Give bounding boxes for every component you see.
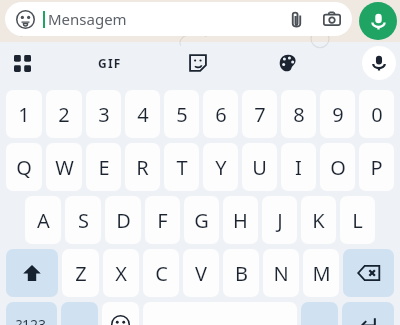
button[interactable]: 3 xyxy=(86,90,121,138)
staticText: J xyxy=(277,207,283,234)
button[interactable]: R xyxy=(125,143,160,191)
button[interactable]: , xyxy=(61,302,98,325)
button[interactable]: D xyxy=(105,196,141,244)
button[interactable]: W xyxy=(46,143,82,191)
button[interactable]: Z xyxy=(62,249,99,297)
button[interactable]: 8 xyxy=(281,90,316,138)
staticText: E xyxy=(98,154,110,181)
button[interactable]: Enter xyxy=(342,302,394,325)
staticText: H xyxy=(233,207,248,234)
button[interactable]: 1 xyxy=(6,90,42,138)
staticText: U xyxy=(252,154,267,181)
staticText: P xyxy=(370,154,383,181)
button[interactable]: K xyxy=(301,196,336,244)
staticText: F xyxy=(157,207,168,234)
staticText: Mensagem xyxy=(48,9,127,29)
staticText: W xyxy=(55,154,74,181)
button[interactable]: Apps xyxy=(7,42,37,84)
button[interactable]: Attach xyxy=(285,8,307,30)
staticText: K xyxy=(312,207,325,234)
staticText: Y xyxy=(215,154,227,181)
button[interactable]: ?123 xyxy=(6,302,57,325)
staticText: 3 xyxy=(98,101,110,128)
button[interactable]: 6 xyxy=(203,90,238,138)
button[interactable]: 5 xyxy=(164,90,199,138)
staticText: M xyxy=(312,260,331,287)
button[interactable]: M xyxy=(303,249,339,297)
button[interactable]: F xyxy=(145,196,180,244)
staticText: O xyxy=(330,154,346,181)
staticText: B xyxy=(235,260,248,287)
button[interactable]: T xyxy=(164,143,199,191)
button[interactable]: Record voice message xyxy=(359,2,397,40)
staticText: 9 xyxy=(332,101,344,128)
button[interactable]: H xyxy=(223,196,258,244)
staticText: A xyxy=(37,207,50,234)
button[interactable]: Emoji xyxy=(5,2,352,36)
staticText: Z xyxy=(75,260,87,287)
button[interactable]: Stickers xyxy=(183,42,213,84)
button[interactable]: Voice input xyxy=(362,46,396,80)
staticText: 8 xyxy=(293,101,305,128)
button[interactable]: . xyxy=(301,302,338,325)
button[interactable]: Q xyxy=(6,143,42,191)
staticText: 1 xyxy=(18,101,30,128)
staticText: X xyxy=(115,260,127,287)
button[interactable]: S xyxy=(65,196,101,244)
button[interactable]: 2 xyxy=(46,90,82,138)
staticText: 6 xyxy=(215,101,227,128)
button[interactable]: G xyxy=(184,196,219,244)
button[interactable]: L xyxy=(340,196,375,244)
staticText: 0 xyxy=(371,101,383,128)
staticText: 4 xyxy=(137,101,149,128)
button[interactable]: B xyxy=(223,249,259,297)
staticText: R xyxy=(136,154,149,181)
staticText: Q xyxy=(16,154,32,181)
staticText: 7 xyxy=(254,101,266,128)
staticText: C xyxy=(155,260,168,287)
staticText: L xyxy=(352,207,363,234)
button[interactable]: A xyxy=(25,196,61,244)
staticText: I xyxy=(295,154,302,181)
staticText: V xyxy=(195,260,207,287)
button[interactable]: V xyxy=(183,249,219,297)
button[interactable]: 9 xyxy=(320,90,355,138)
button[interactable]: Camera xyxy=(321,8,343,30)
button[interactable]: U xyxy=(242,143,277,191)
staticText: GIF xyxy=(98,55,122,71)
staticText: D xyxy=(116,207,131,234)
button[interactable]: 0 xyxy=(359,90,394,138)
staticText: G xyxy=(194,207,209,234)
button[interactable]: Y xyxy=(203,143,238,191)
button[interactable]: O xyxy=(320,143,355,191)
button[interactable]: Shift xyxy=(6,249,58,297)
staticText: N xyxy=(273,260,289,287)
button[interactable]: E xyxy=(86,143,121,191)
staticText: 5 xyxy=(176,101,188,128)
button[interactable]: Emoji xyxy=(14,8,36,30)
button[interactable]: N xyxy=(263,249,299,297)
button[interactable]: Backspace xyxy=(343,249,394,297)
button[interactable]: Themes xyxy=(273,42,303,84)
button[interactable]: J xyxy=(262,196,297,244)
staticText: ?123 xyxy=(16,315,47,325)
button[interactable]: 7 xyxy=(242,90,277,138)
button[interactable]: 4 xyxy=(125,90,160,138)
button[interactable]: Emoji xyxy=(102,302,139,325)
button[interactable]: I xyxy=(281,143,316,191)
button[interactable]: GIF xyxy=(92,42,128,84)
staticText: 2 xyxy=(58,101,70,128)
button[interactable]: X xyxy=(103,249,139,297)
staticText: T xyxy=(176,154,188,181)
staticText: S xyxy=(78,207,89,234)
button[interactable]: C xyxy=(143,249,179,297)
button[interactable]: P xyxy=(359,143,394,191)
